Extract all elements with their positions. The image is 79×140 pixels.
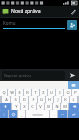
button[interactable]: Čísla a symboly xyxy=(0,110,8,118)
button[interactable]: I xyxy=(56,89,63,96)
staticText: N xyxy=(55,104,59,109)
button[interactable]: Nastavení klávesnice xyxy=(68,81,79,89)
button[interactable]: Q xyxy=(0,89,7,96)
button[interactable]: Vybrat kontakt xyxy=(67,20,77,30)
button[interactable]: Shift xyxy=(0,103,11,110)
button[interactable]: E xyxy=(16,89,23,96)
button[interactable]: V xyxy=(37,103,44,110)
button[interactable]: K xyxy=(62,96,69,103)
staticText: V xyxy=(39,104,42,109)
button[interactable]: Enter xyxy=(68,110,79,118)
staticText: Napsat zprávu xyxy=(4,73,32,78)
staticText: A xyxy=(5,97,8,102)
staticText: L xyxy=(72,97,75,102)
staticText: G xyxy=(40,97,43,102)
staticText: E xyxy=(18,90,21,95)
staticText: D xyxy=(23,97,26,102)
staticText: C xyxy=(31,104,34,109)
button[interactable]: Přiložit xyxy=(68,7,77,16)
button[interactable]: Emoji xyxy=(9,110,17,118)
button[interactable]: F xyxy=(29,96,37,103)
staticText: K xyxy=(64,97,67,102)
button[interactable]: T xyxy=(32,89,39,96)
staticText: M xyxy=(63,104,67,109)
staticText: . xyxy=(53,112,55,117)
staticText: Nová zpráva xyxy=(11,8,41,15)
button[interactable]: , xyxy=(18,110,25,118)
staticText: O xyxy=(66,90,70,95)
button[interactable]: G xyxy=(38,96,45,103)
staticText: H xyxy=(48,97,51,102)
button[interactable]: A xyxy=(2,96,10,103)
staticText: Q xyxy=(2,90,6,95)
button[interactable]: N xyxy=(53,103,60,110)
staticText: R xyxy=(26,90,29,95)
button[interactable]: Odeslat xyxy=(67,70,77,80)
staticText: I xyxy=(59,90,61,95)
button[interactable]: S xyxy=(11,96,19,103)
staticText: T xyxy=(34,90,37,95)
button[interactable]: B xyxy=(45,103,52,110)
button[interactable]: M xyxy=(61,103,68,110)
button[interactable]: H xyxy=(46,96,53,103)
button[interactable]: O xyxy=(64,89,71,96)
button[interactable]: D xyxy=(20,96,28,103)
staticText: F xyxy=(32,97,35,102)
staticText: P xyxy=(74,90,77,95)
button[interactable]: Y xyxy=(12,103,20,110)
staticText: , xyxy=(21,112,23,117)
staticText: B xyxy=(47,104,50,109)
button[interactable]: J xyxy=(54,96,61,103)
staticText: X xyxy=(23,104,26,109)
button[interactable]: W xyxy=(8,89,15,96)
staticText: Z xyxy=(42,90,45,95)
staticText: Y xyxy=(15,104,18,109)
button[interactable]: Napsat zprávu xyxy=(2,71,65,80)
button[interactable]: L xyxy=(70,96,77,103)
staticText: Komu xyxy=(3,20,16,26)
button[interactable]: C xyxy=(29,103,36,110)
button[interactable]: U xyxy=(48,89,55,96)
staticText: J xyxy=(57,97,59,102)
button[interactable]: Smazat xyxy=(69,103,79,110)
button[interactable]: X xyxy=(21,103,28,110)
button[interactable]: Zpět xyxy=(2,8,9,15)
button[interactable]: Z xyxy=(40,89,47,96)
staticText: W xyxy=(10,90,14,95)
button[interactable]: P xyxy=(72,89,79,96)
button[interactable]: Komu xyxy=(3,20,65,29)
button[interactable]: . xyxy=(50,110,57,118)
staticText: U xyxy=(50,90,53,95)
staticText: S xyxy=(14,97,17,102)
button[interactable]: Mezerník xyxy=(26,110,49,118)
button[interactable]: Diakritika xyxy=(58,110,67,118)
button[interactable]: R xyxy=(24,89,31,96)
